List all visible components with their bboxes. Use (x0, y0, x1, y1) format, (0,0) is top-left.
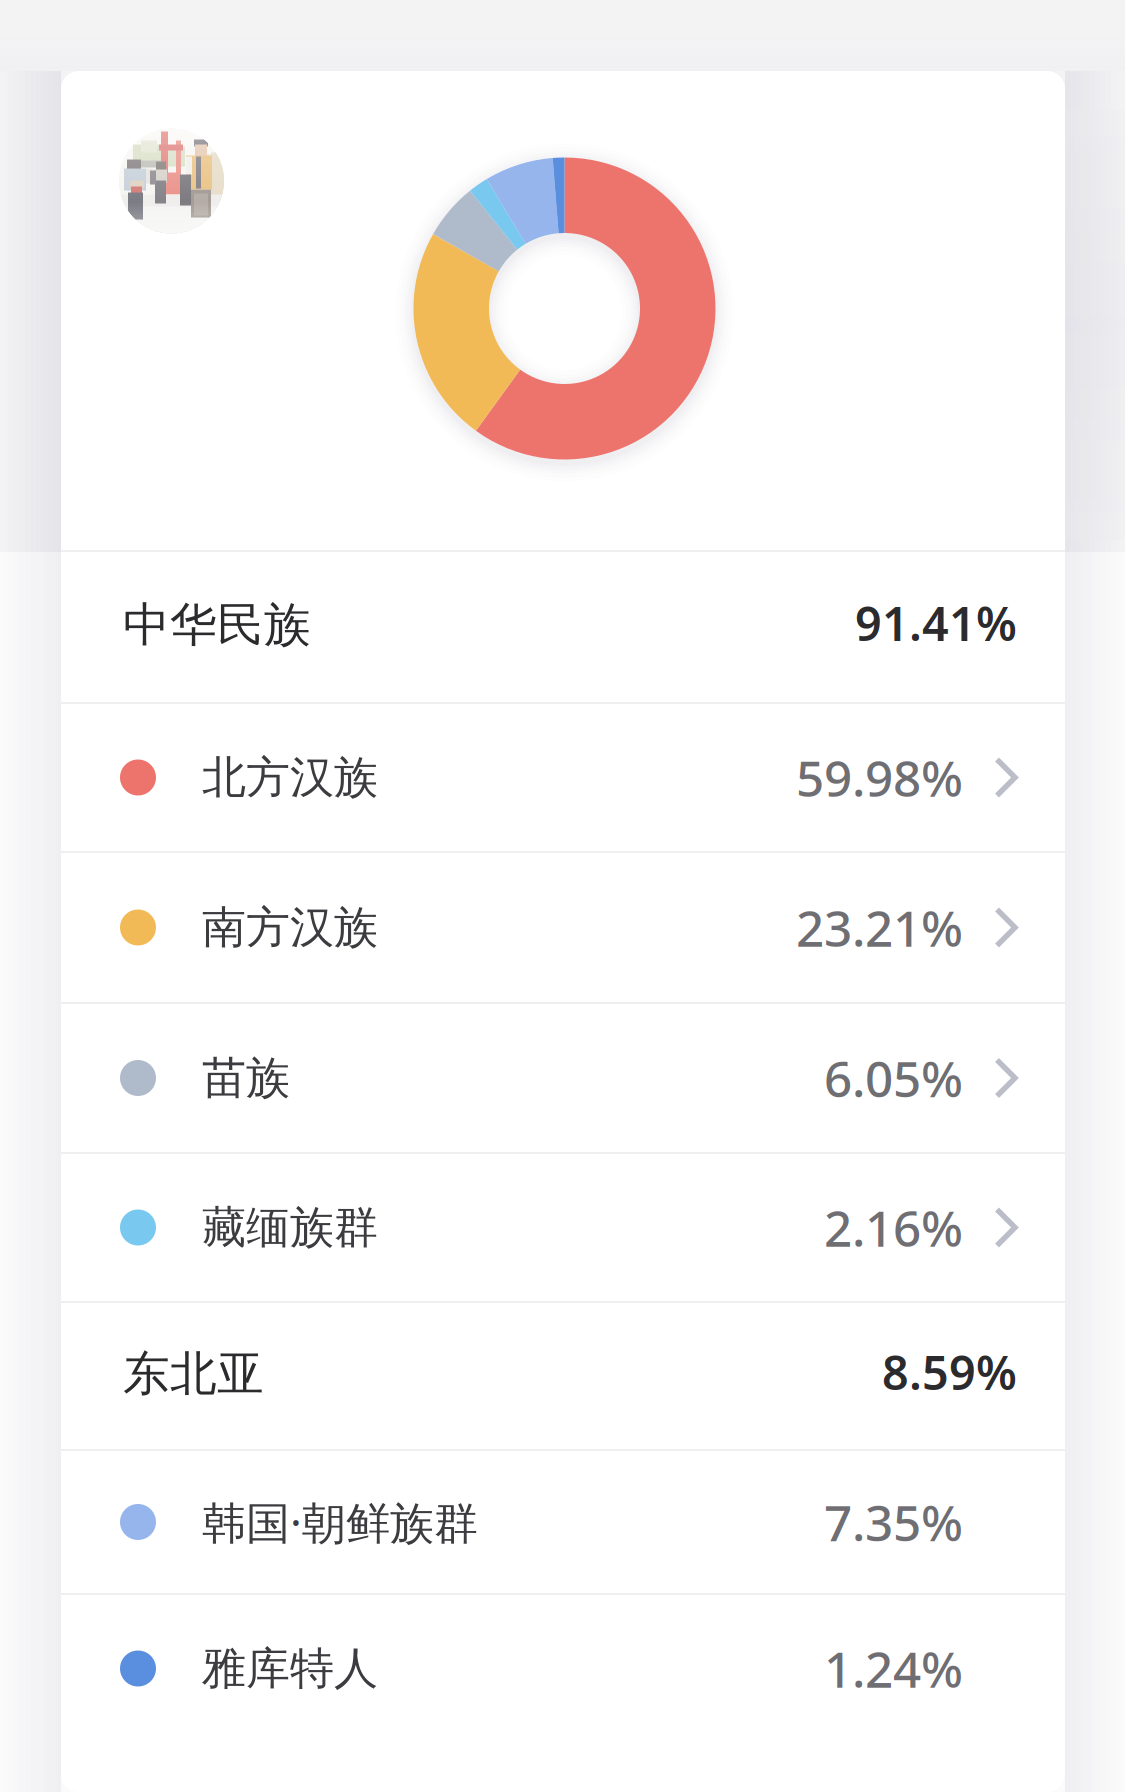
staticText: 北方汉族 (202, 750, 378, 804)
staticText: 2.16% (824, 1195, 963, 1260)
staticText: 南方汉族 (202, 900, 378, 954)
staticText: 59.98% (796, 745, 963, 810)
button[interactable]: 中华民族 (61, 552, 1065, 702)
button[interactable]: 苗族 (61, 1004, 1065, 1152)
staticText: 藏缅族群 (202, 1200, 378, 1254)
staticText: 苗族 (202, 1051, 290, 1105)
staticText: 韩国·朝鲜族群 (202, 1493, 478, 1551)
staticText: 1.24% (824, 1636, 963, 1701)
staticText: 中华民族 (123, 596, 311, 654)
staticText: 7.35% (824, 1489, 963, 1555)
button[interactable]: 藏缅族群 (61, 1154, 1065, 1301)
button[interactable]: 韩国·朝鲜族群 (61, 1451, 1065, 1593)
button[interactable]: 南方汉族 (61, 853, 1065, 1002)
staticText: 91.41% (855, 592, 1017, 654)
button[interactable]: 雅库特人 (61, 1595, 1065, 1742)
staticText: 东北亚 (123, 1345, 264, 1403)
button[interactable]: 北方汉族 (61, 704, 1065, 851)
staticText: 8.59% (882, 1341, 1017, 1403)
staticText: 6.05% (824, 1045, 963, 1111)
staticText: 雅库特人 (202, 1641, 378, 1695)
button[interactable]: 东北亚 (61, 1303, 1065, 1449)
staticText: 23.21% (796, 895, 963, 960)
